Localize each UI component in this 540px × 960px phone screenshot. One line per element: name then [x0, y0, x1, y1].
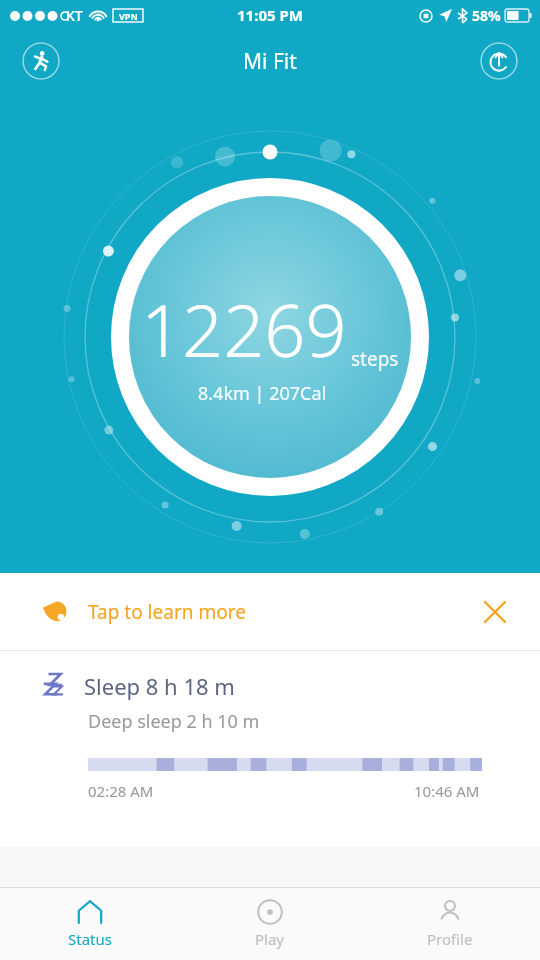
button[interactable]: Play	[180, 888, 360, 960]
button[interactable]: Sleep 8 h 18 m	[0, 651, 540, 847]
staticText: KT	[66, 6, 83, 25]
staticText: steps	[351, 346, 399, 372]
button[interactable]: Dismiss	[472, 589, 518, 635]
staticText: Play	[255, 929, 285, 949]
staticText: Tap to learn more	[88, 599, 246, 625]
button[interactable]: Tap to learn more	[0, 573, 540, 650]
staticText: Mi Fit	[243, 47, 297, 76]
staticText: Sleep 8 h 18 m	[84, 671, 235, 701]
staticText: VPN	[119, 10, 138, 22]
button[interactable]: Share	[480, 42, 518, 80]
button[interactable]: Activity	[22, 42, 60, 80]
staticText: 58%	[472, 6, 501, 25]
staticText: 12269	[141, 280, 347, 378]
button[interactable]: Status	[0, 888, 180, 960]
staticText: 11:05 PM	[237, 5, 303, 25]
staticText: 8.4km | 207Cal	[198, 381, 327, 406]
staticText: 10:46 AM	[414, 781, 480, 801]
button[interactable]: Profile	[360, 888, 540, 960]
staticText: Profile	[427, 929, 473, 949]
staticText: Status	[68, 929, 112, 949]
staticText: 02:28 AM	[88, 781, 154, 801]
staticText: Deep sleep 2 h 10 m	[88, 709, 260, 734]
